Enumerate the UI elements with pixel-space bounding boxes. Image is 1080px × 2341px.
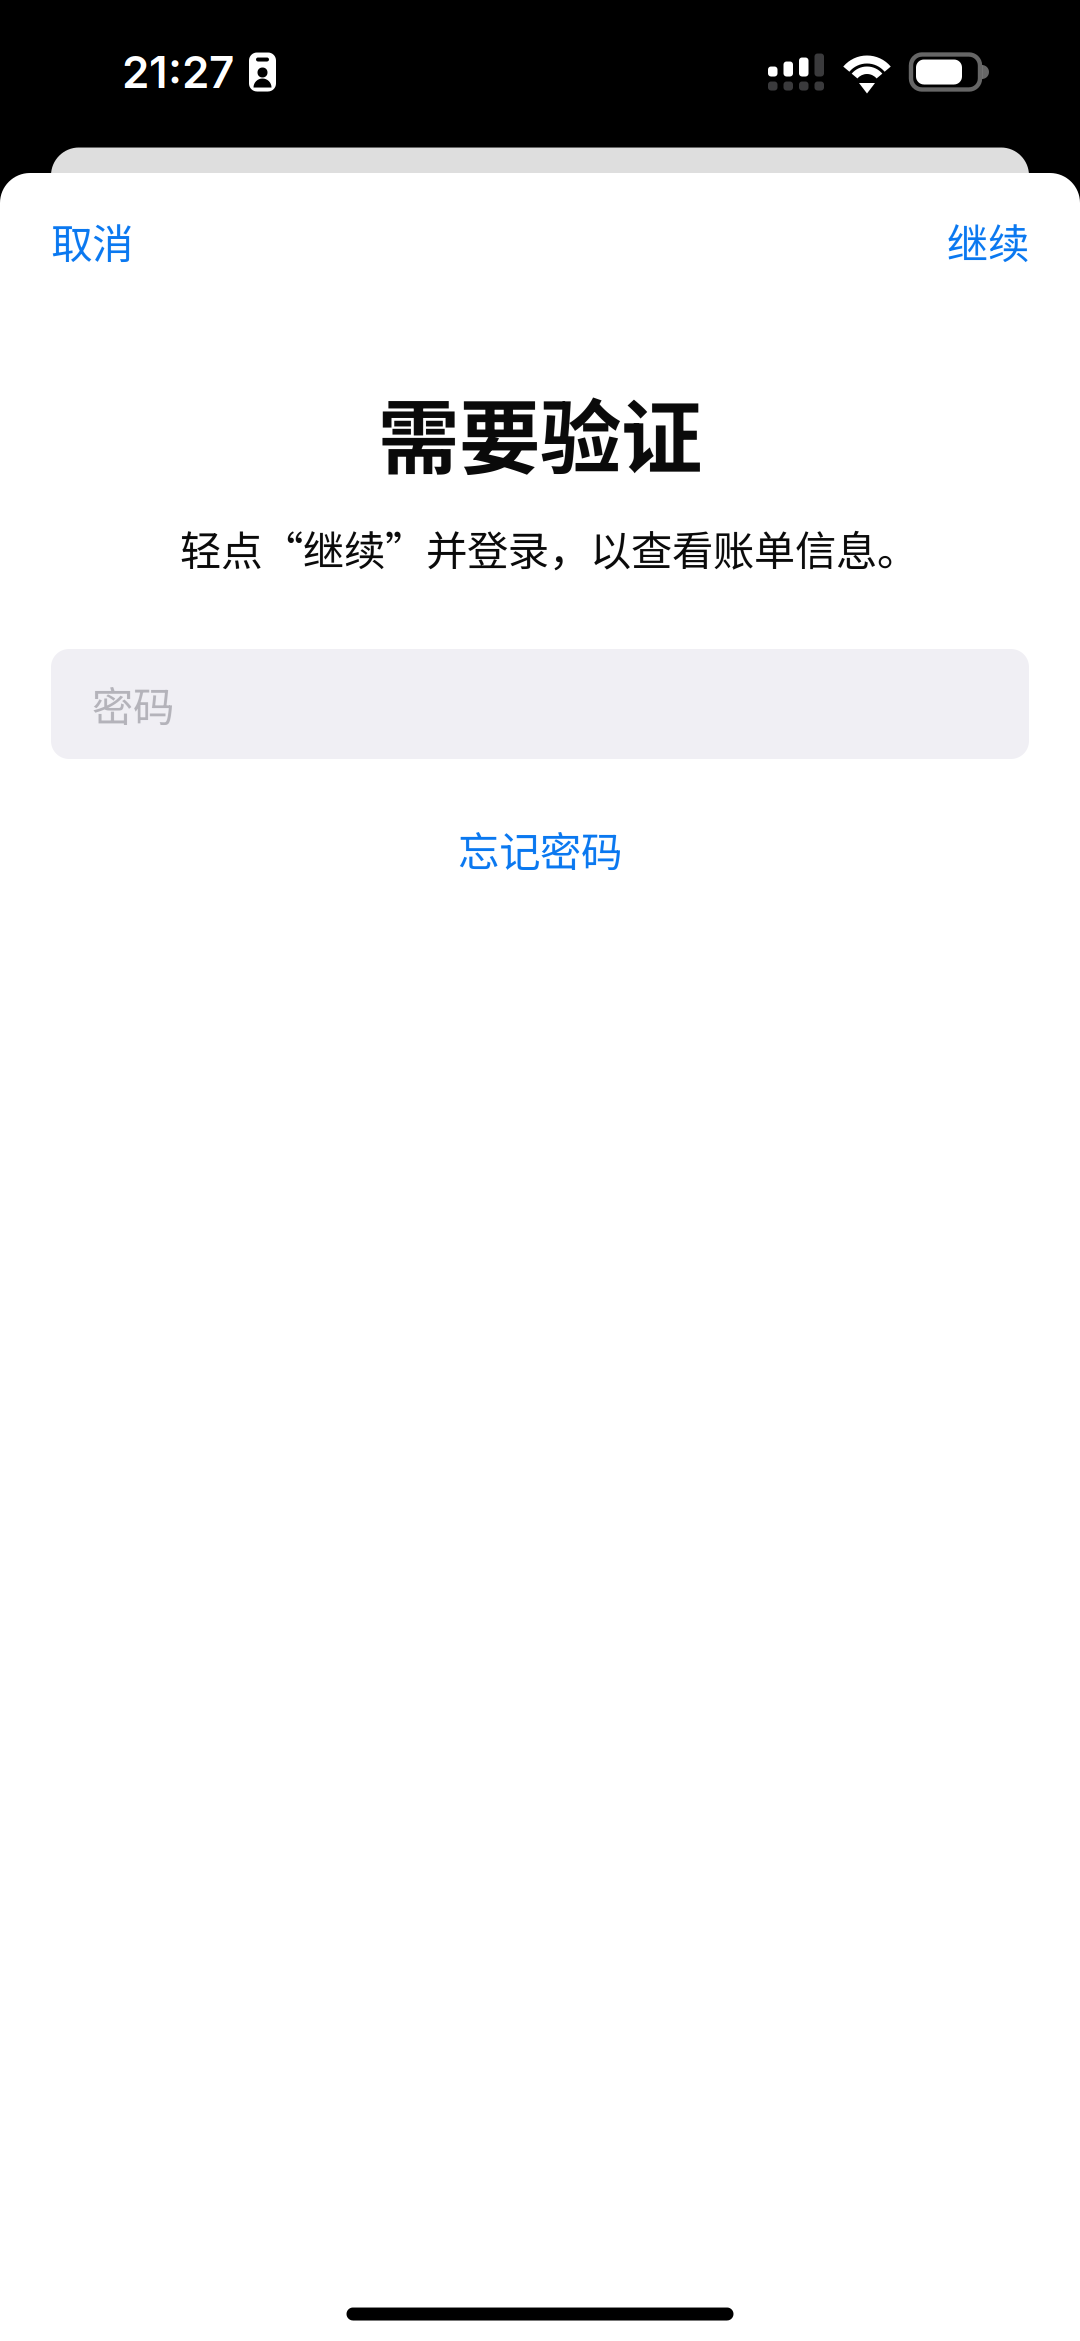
staticText: 21:27: [122, 45, 234, 99]
staticText: 忘记密码: [458, 819, 622, 879]
button[interactable]: 忘记密码: [390, 801, 690, 897]
button[interactable]: 密码: [51, 649, 1029, 759]
staticText: 需要验证: [378, 373, 702, 491]
button[interactable]: 取消: [0, 193, 222, 289]
staticText: 继续: [947, 211, 1029, 271]
staticText: 取消: [51, 211, 133, 271]
staticText: 密码: [92, 674, 174, 734]
staticText: 轻点“继续”并登录，以查看账单信息。: [180, 518, 918, 578]
button[interactable]: 继续: [858, 193, 1080, 289]
